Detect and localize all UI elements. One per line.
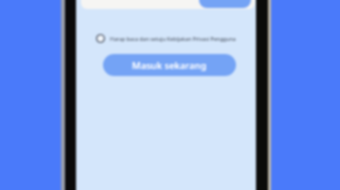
button[interactable]: Nomor telepon bbox=[81, 0, 255, 9]
staticText: Masuk sekarang bbox=[132, 59, 207, 72]
staticText: Harap baca dan setuju Kebijakan Privasi … bbox=[110, 35, 236, 42]
button[interactable]: Masuk sekarang bbox=[103, 54, 236, 76]
button[interactable]: Kirim kode bbox=[199, 0, 251, 8]
button[interactable]: Harap baca dan setuju Kebijakan Privasi … bbox=[95, 33, 236, 44]
